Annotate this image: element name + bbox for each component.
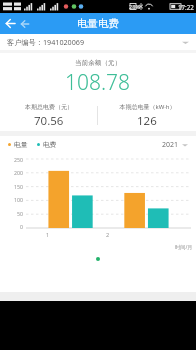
staticText: 50 xyxy=(17,210,23,217)
staticText: 100 xyxy=(14,196,23,203)
button[interactable]: Up xyxy=(17,16,33,32)
staticText: 1 xyxy=(46,231,50,239)
staticText: 本期总电量（kW·h） xyxy=(119,103,176,111)
button[interactable]: Back xyxy=(2,15,19,32)
staticText: 28% xyxy=(129,3,141,11)
staticText: 17:22 xyxy=(178,3,194,11)
staticText: 200 xyxy=(14,169,23,176)
button[interactable]: 本期总电费（元） xyxy=(0,103,97,129)
staticText: 108.78 xyxy=(65,68,131,97)
staticText: 2021 xyxy=(162,140,179,150)
staticText: 当前余额（元） xyxy=(75,59,122,67)
button[interactable]: Page indicator xyxy=(96,257,100,261)
staticText: 150 xyxy=(14,183,23,190)
button[interactable]: 本期总电量（kW·h） xyxy=(98,103,196,129)
staticText: 电量电费 xyxy=(77,17,119,30)
staticText: 0 xyxy=(20,223,23,230)
staticText: 126 xyxy=(137,113,157,129)
staticText: 电量 xyxy=(14,140,28,149)
staticText: 时间/月 xyxy=(175,243,193,250)
staticText: 电费 xyxy=(43,140,57,149)
button[interactable]: 客户编号：1941020069 xyxy=(0,34,196,50)
staticText: 70.56 xyxy=(34,113,64,129)
staticText: 2 xyxy=(106,231,110,239)
staticText: 客户编号：1941020069 xyxy=(7,37,85,47)
staticText: 本期总电费（元） xyxy=(25,103,73,111)
button[interactable]: 2021 xyxy=(162,140,188,150)
staticText: 250 xyxy=(14,156,23,163)
